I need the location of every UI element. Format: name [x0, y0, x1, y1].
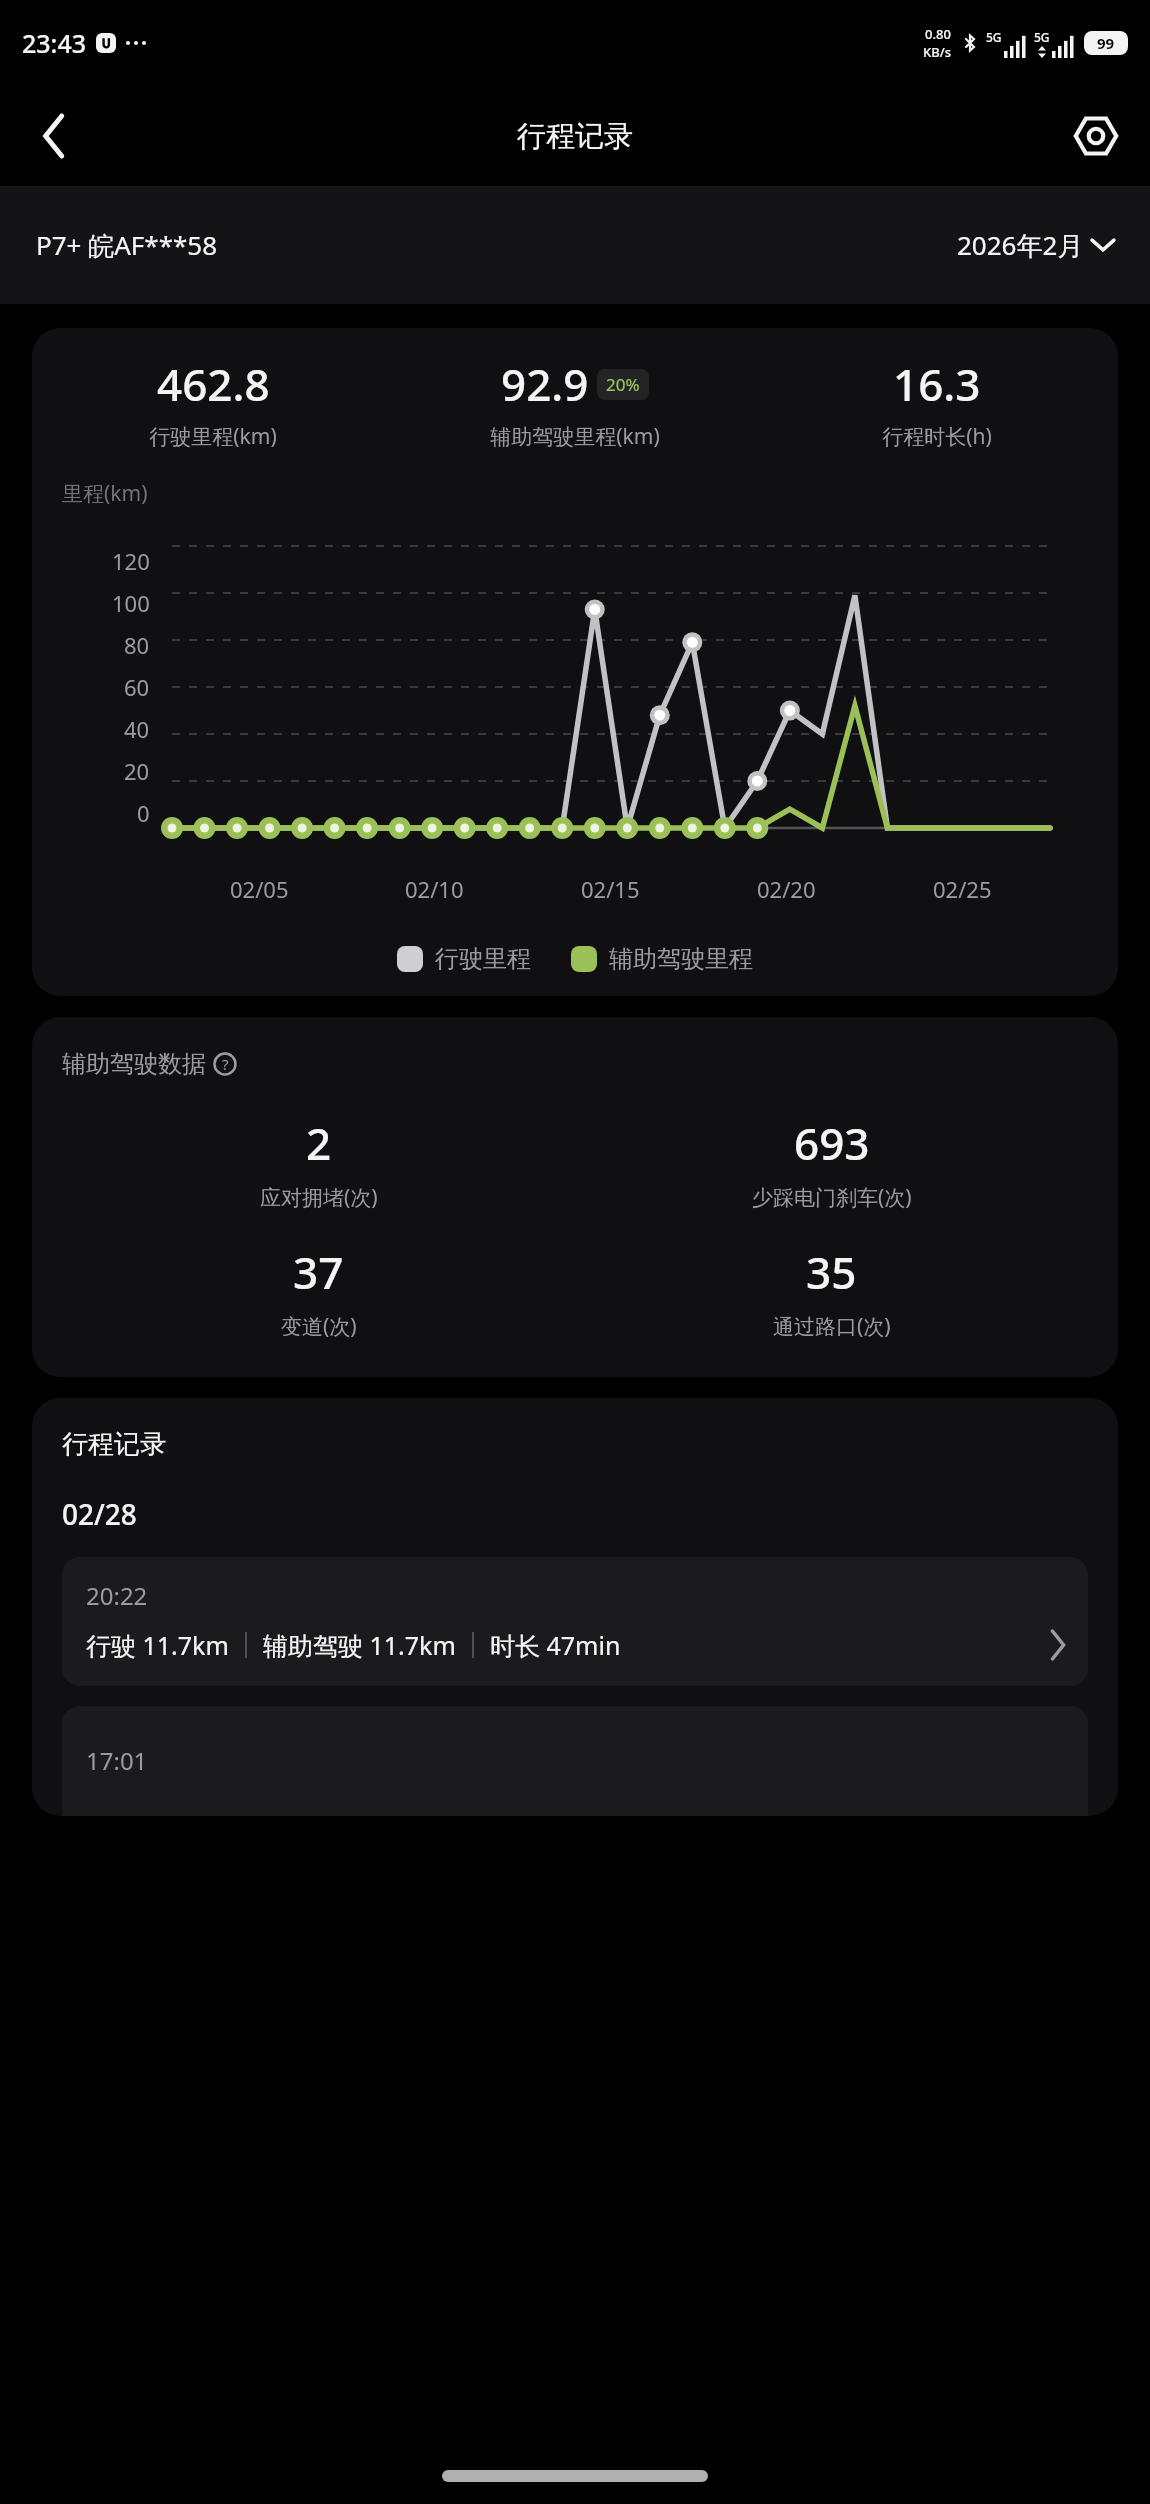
staticText: 02/25 — [933, 874, 992, 904]
button[interactable]: Help — [212, 1051, 238, 1077]
button[interactable]: 20:22 — [62, 1557, 1088, 1686]
staticText: 行程记录 — [62, 1428, 166, 1461]
staticText: 20% — [606, 373, 640, 396]
staticText: 35 — [806, 1242, 857, 1302]
staticText: 100 — [112, 588, 150, 618]
staticText: 462.8 — [157, 354, 270, 414]
staticText: 通过路口(次) — [773, 1312, 891, 1341]
staticText: 37 — [293, 1242, 344, 1302]
button[interactable]: Settings — [1064, 104, 1128, 168]
staticText: 20:22 — [86, 1579, 148, 1612]
staticText: 辅助驾驶里程(km) — [490, 422, 660, 451]
staticText: 0.80 — [925, 25, 951, 43]
staticText: 变道(次) — [281, 1312, 357, 1341]
staticText: 60 — [124, 672, 150, 702]
staticText: 行程时长(h) — [882, 422, 992, 451]
button[interactable]: 17:01 — [62, 1706, 1088, 1816]
staticText: 5G — [1034, 29, 1050, 45]
staticText: 02/05 — [230, 874, 289, 904]
staticText: 02/20 — [757, 874, 816, 904]
staticText: 17:01 — [86, 1744, 148, 1777]
staticText: 20 — [124, 756, 150, 786]
staticText: 02/28 — [62, 1495, 137, 1533]
staticText: 99 — [1097, 33, 1115, 53]
staticText: 5G — [986, 29, 1002, 45]
staticText: 16.3 — [893, 354, 981, 414]
button[interactable]: Back — [22, 104, 86, 168]
staticText: 02/15 — [581, 874, 640, 904]
staticText: 2 — [306, 1113, 332, 1173]
staticText: 应对拥堵(次) — [260, 1183, 378, 1212]
staticText: 0 — [137, 798, 150, 828]
staticText: 120 — [112, 546, 150, 576]
staticText: 2026年2月 — [957, 227, 1084, 263]
staticText: 辅助驾驶数据 — [62, 1049, 206, 1079]
staticText: KB/s — [923, 43, 952, 61]
staticText: 行驶里程(km) — [149, 422, 277, 451]
staticText: 行驶里程 — [435, 944, 531, 974]
button[interactable]: 2026年2月 — [957, 227, 1114, 263]
staticText: 时长 47min — [490, 1628, 621, 1662]
staticText: 40 — [124, 714, 150, 744]
staticText: 92.9 — [501, 354, 589, 414]
staticText: 行程记录 — [517, 118, 633, 155]
staticText: 辅助驾驶 11.7km — [263, 1628, 456, 1662]
staticText: 里程(km) — [62, 479, 148, 508]
staticText: 23:43 — [22, 26, 87, 60]
staticText: 行驶 11.7km — [86, 1628, 229, 1662]
staticText: 辅助驾驶里程 — [609, 944, 753, 974]
staticText: 693 — [794, 1113, 870, 1173]
staticText: P7+ 皖AF***58 — [36, 227, 218, 263]
staticText: ? — [222, 1054, 229, 1074]
staticText: 少踩电门刹车(次) — [752, 1183, 912, 1212]
staticText: 80 — [124, 630, 150, 660]
staticText: 02/10 — [405, 874, 464, 904]
